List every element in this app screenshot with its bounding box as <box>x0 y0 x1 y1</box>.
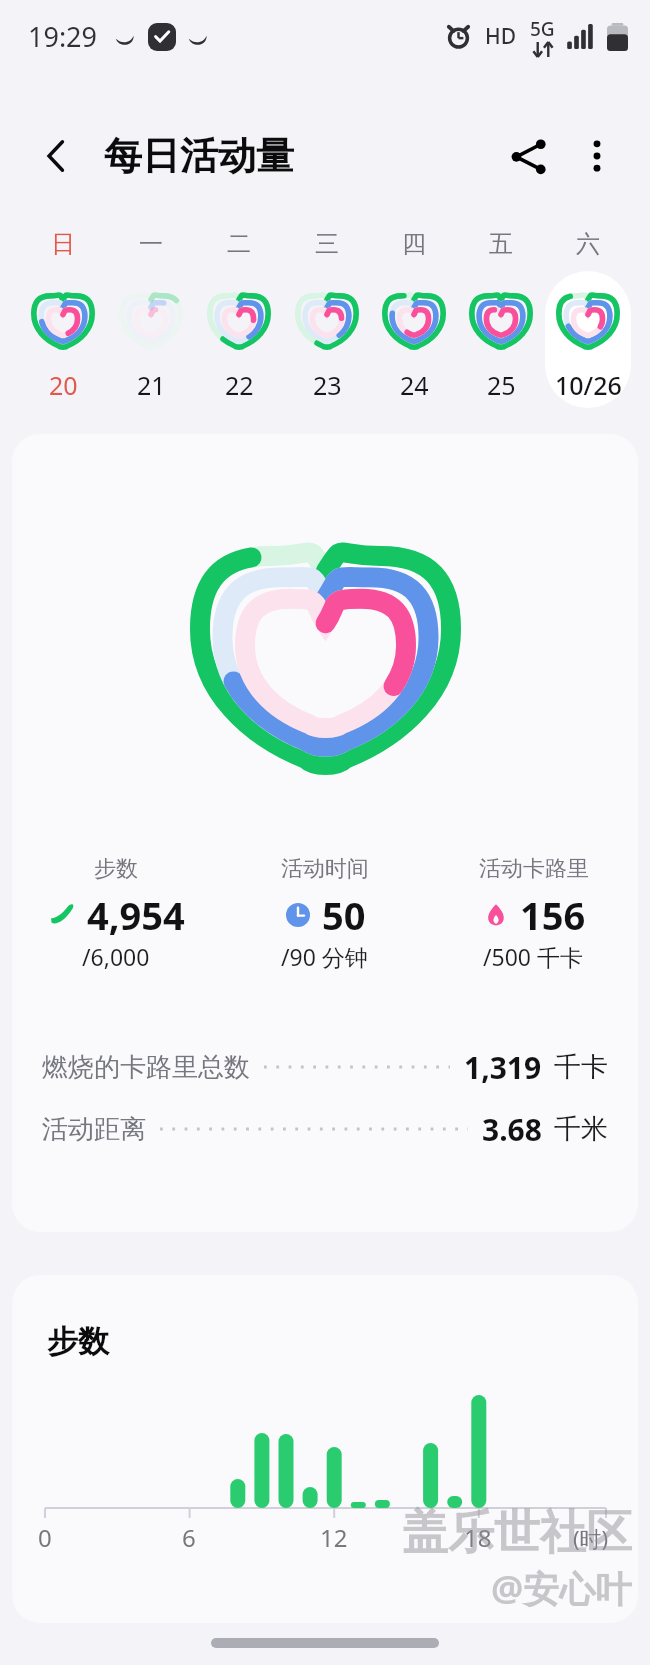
staticText: 千卡 <box>554 1050 608 1084</box>
button[interactable]: 活动卡路里 <box>429 855 638 972</box>
staticText: 二 <box>227 229 251 259</box>
staticText: 每日活动量 <box>104 132 294 180</box>
button[interactable]: 21 <box>108 271 194 408</box>
staticText: 四 <box>402 229 426 259</box>
staticText: 6 <box>182 1521 196 1554</box>
button[interactable]: 燃烧的卡路里总数 <box>42 1045 608 1089</box>
staticText: 5G <box>530 16 555 42</box>
staticText: 21 <box>137 368 166 402</box>
staticText: 10/26 <box>555 368 622 402</box>
staticText: 活动时间 <box>281 855 369 883</box>
staticText: 六 <box>576 229 600 259</box>
staticText: 50 <box>322 889 366 941</box>
button[interactable]: 25 <box>458 271 544 408</box>
staticText: 盖乐世社区 <box>402 1504 632 1562</box>
staticText: @安心叶 <box>491 1564 632 1613</box>
staticText: 19:29 <box>28 18 98 55</box>
staticText: HD <box>485 22 517 51</box>
staticText: (时) <box>573 1523 609 1553</box>
button[interactable]: 活动距离 <box>42 1107 608 1151</box>
button[interactable]: 22 <box>196 271 282 408</box>
staticText: 日 <box>51 229 75 259</box>
staticText: 步数 <box>47 1322 109 1361</box>
button[interactable]: 24 <box>371 271 457 408</box>
staticText: 12 <box>320 1521 348 1554</box>
staticText: 步数 <box>94 855 138 883</box>
staticText: /500 千卡 <box>483 941 584 972</box>
button[interactable]: Share <box>500 127 558 185</box>
staticText: 22 <box>225 368 254 402</box>
staticText: 4,954 <box>87 889 185 941</box>
staticText: 五 <box>489 229 513 259</box>
staticText: /90 分钟 <box>281 941 368 972</box>
button[interactable]: Back <box>28 127 86 185</box>
staticText: 24 <box>400 368 429 402</box>
staticText: 三 <box>315 229 339 259</box>
staticText: 一 <box>139 229 163 259</box>
staticText: 3.68 <box>482 1109 542 1150</box>
staticText: 千米 <box>554 1112 608 1146</box>
staticText: 23 <box>313 368 342 402</box>
button[interactable]: 23 <box>284 271 370 408</box>
button[interactable]: 10/26 <box>545 271 631 408</box>
staticText: 1,319 <box>464 1047 542 1088</box>
staticText: 18 <box>464 1521 492 1554</box>
staticText: 20 <box>49 368 78 402</box>
button[interactable]: 活动时间 <box>220 855 429 972</box>
staticText: 活动距离 <box>42 1113 146 1146</box>
staticText: 0 <box>38 1521 52 1554</box>
staticText: /6,000 <box>82 941 150 972</box>
staticText: 25 <box>487 368 516 402</box>
button[interactable]: More options <box>568 127 626 185</box>
button[interactable]: 步数 <box>12 855 220 972</box>
button[interactable]: 20 <box>20 271 106 408</box>
staticText: 燃烧的卡路里总数 <box>42 1051 250 1084</box>
staticText: 156 <box>520 889 586 941</box>
staticText: 活动卡路里 <box>479 855 589 883</box>
